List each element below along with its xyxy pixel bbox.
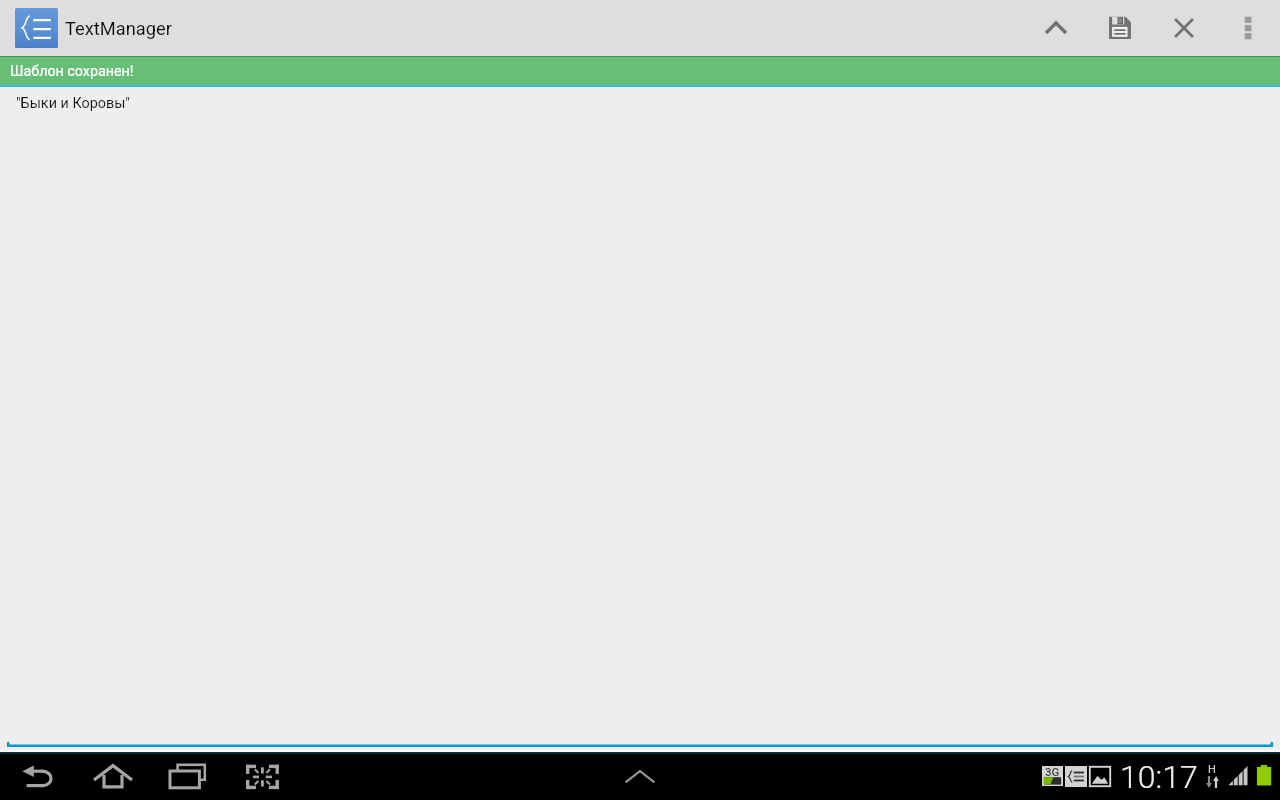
button[interactable]: More options	[1220, 0, 1276, 56]
button[interactable]: Close	[1156, 0, 1212, 56]
staticText: Шаблон сохранен!	[10, 63, 134, 80]
staticText: TextManager	[65, 18, 172, 39]
staticText: "Быки и Коровы"	[16, 95, 130, 112]
button[interactable]: Recents	[160, 754, 214, 800]
button[interactable]: TextManager	[15, 0, 172, 56]
staticText: 10:17	[1120, 758, 1198, 796]
staticText: 3G	[1045, 765, 1060, 778]
button[interactable]: "Быки и Коровы"	[0, 87, 1280, 116]
button[interactable]: Save	[1092, 0, 1148, 56]
button[interactable]: Home	[86, 754, 140, 800]
staticText: H	[1208, 763, 1216, 776]
button[interactable]: Collapse	[1028, 0, 1084, 56]
button[interactable]: Hide keyboard	[613, 754, 667, 800]
button[interactable]: Back	[12, 754, 66, 800]
button[interactable]: Screenshot	[235, 754, 289, 800]
